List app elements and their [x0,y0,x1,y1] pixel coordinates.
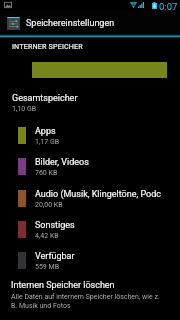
staticText: INTERNER SPEICHER [12,42,83,50]
staticText: 559 MB [35,263,60,271]
staticText: Alle Daten auf internem Speicher löschen… [11,293,160,301]
staticText: 0:07 [159,1,178,12]
staticText: Bilder, Videos [35,157,89,168]
button[interactable]: Internen Speicher löschen [0,278,180,320]
other: Screenshot [4,2,12,8]
staticText: Apps [35,126,56,137]
staticText: B. Musik und Fotos [11,302,71,310]
staticText: Sonstiges [35,220,75,231]
button[interactable]: Audio (Musik, Klingeltöne, Podc [0,190,180,221]
other: Einstellungen [7,17,20,30]
button[interactable]: Bilder, Videos [0,158,180,189]
button[interactable]: Verfügbar [0,252,180,283]
button[interactable]: Apps [0,127,180,158]
staticText: 1,17 GB [35,138,60,146]
staticText: Verfügbar [35,251,75,262]
button[interactable]: Einstellungen [0,11,180,33]
staticText: 760 KB [35,169,58,177]
staticText: 20,00 KB [35,201,63,209]
staticText: 4,42 KB [35,232,59,240]
button[interactable]: Sonstiges [0,221,180,252]
staticText: Audio (Musik, Klingeltöne, Podc [35,189,161,200]
staticText: Gesamtspeicher [12,93,78,104]
staticText: Internen Speicher löschen [11,280,115,291]
staticText: Speichereinstellungen [26,18,115,29]
staticText: 1,10 GB [12,105,37,113]
